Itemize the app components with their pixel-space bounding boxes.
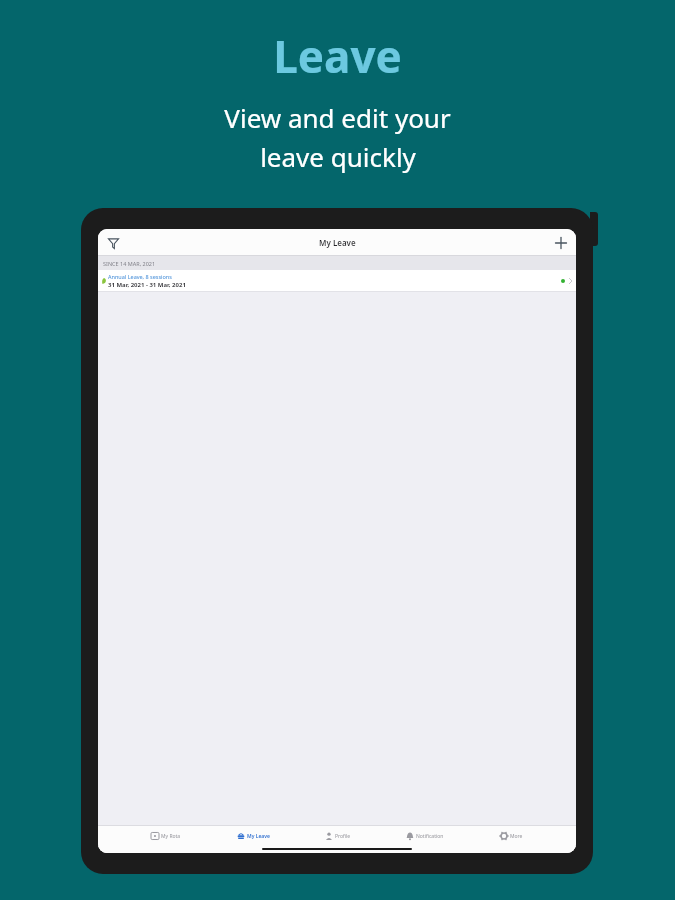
button[interactable]: Annual Leave, 8 sessions <box>98 270 576 292</box>
staticText: My Leave <box>319 237 356 248</box>
staticText: Annual Leave, 8 sessions <box>108 273 172 280</box>
button[interactable]: Notification <box>404 832 446 840</box>
staticText: More <box>510 833 523 840</box>
staticText: My Leave <box>247 833 270 840</box>
button[interactable]: Profile <box>323 832 353 840</box>
button[interactable]: My Leave <box>235 832 272 840</box>
staticText: Notification <box>416 833 444 840</box>
staticText: 31 Mar, 2021 - 31 Mar, 2021 <box>108 281 186 289</box>
staticText: My Rota <box>161 833 181 840</box>
button[interactable]: My Rota <box>149 832 183 840</box>
button[interactable]: More <box>498 832 525 840</box>
staticText: View and edit your <box>224 100 451 135</box>
button[interactable]: Filter <box>102 232 124 254</box>
staticText: SINCE 14 MAR, 2021 <box>103 260 156 267</box>
staticText: leave quickly <box>260 139 416 174</box>
staticText: Leave <box>273 26 402 86</box>
staticText: Profile <box>335 833 351 840</box>
button[interactable]: Add leave <box>550 232 572 254</box>
